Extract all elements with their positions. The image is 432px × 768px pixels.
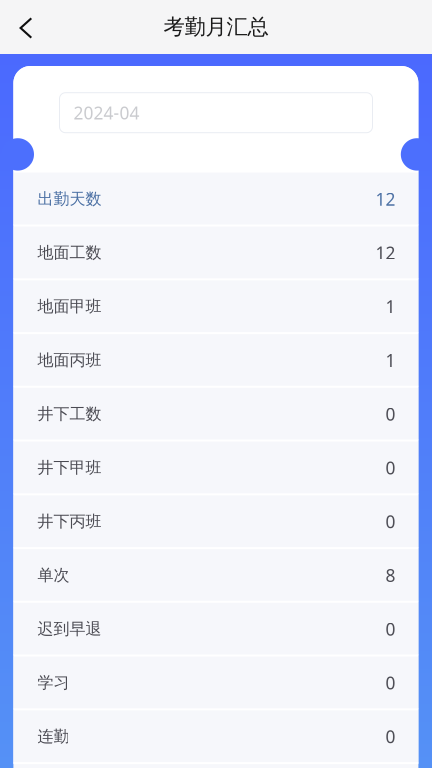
staticText: 0 xyxy=(385,456,395,479)
staticText: 迟到早退 xyxy=(37,619,101,639)
staticText: 学习 xyxy=(37,673,69,692)
button[interactable]: 返回 xyxy=(0,0,51,54)
button[interactable]: 地面丙班 xyxy=(13,334,418,386)
staticText: 地面丙班 xyxy=(37,350,101,370)
staticText: 1 xyxy=(385,295,395,318)
button[interactable]: 地面工数 xyxy=(13,227,418,279)
staticText: 出勤天数 xyxy=(37,189,101,209)
staticText: 井下工数 xyxy=(37,404,101,424)
staticText: 地面工数 xyxy=(37,243,101,262)
staticText: 12 xyxy=(375,187,395,210)
button[interactable]: 井下甲班 xyxy=(13,442,418,494)
button[interactable]: 地面甲班 xyxy=(13,280,418,332)
staticText: 0 xyxy=(385,510,395,533)
staticText: 2024-04 xyxy=(73,101,139,124)
staticText: 单次 xyxy=(37,565,69,585)
button[interactable]: 学习 xyxy=(13,656,418,709)
button[interactable]: 迟到早退 xyxy=(13,603,418,655)
staticText: 8 xyxy=(385,564,395,587)
staticText: 0 xyxy=(385,617,395,640)
staticText: 12 xyxy=(375,241,395,264)
staticText: 1 xyxy=(385,349,395,372)
button[interactable]: 单次 xyxy=(13,549,418,601)
button[interactable]: 井下工数 xyxy=(13,388,418,440)
button[interactable]: 井下丙班 xyxy=(13,495,418,547)
staticText: 地面甲班 xyxy=(37,297,101,316)
staticText: 0 xyxy=(385,402,395,425)
staticText: 连勤 xyxy=(37,727,69,746)
staticText: 井下甲班 xyxy=(37,458,101,477)
staticText: 0 xyxy=(385,671,395,694)
staticText: 井下丙班 xyxy=(37,512,101,531)
button[interactable]: 连勤 xyxy=(13,710,418,762)
staticText: 考勤月汇总 xyxy=(163,14,268,40)
button[interactable]: 2024-04 xyxy=(59,93,372,133)
button[interactable]: 出勤天数 xyxy=(13,173,418,225)
staticText: 0 xyxy=(385,725,395,748)
